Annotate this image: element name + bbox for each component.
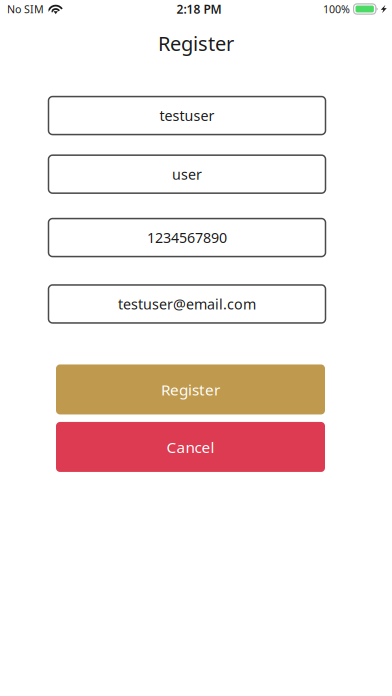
staticText: testuser@email.com [118, 294, 256, 314]
staticText: Register [161, 379, 220, 400]
button[interactable]: 1234567890 [48, 219, 325, 257]
staticText: Cancel [166, 437, 214, 457]
staticText: Register [158, 30, 234, 57]
staticText: No SIM [7, 2, 44, 16]
button[interactable]: Cancel [56, 422, 325, 472]
staticText: user [172, 164, 202, 184]
staticText: testuser [159, 106, 214, 125]
button[interactable]: testuser@email.com [48, 285, 325, 323]
button[interactable]: Register [56, 364, 325, 414]
button[interactable]: testuser [48, 97, 325, 135]
staticText: 2:18 PM [176, 1, 221, 17]
staticText: 100% [323, 2, 350, 16]
button[interactable]: user [48, 155, 325, 193]
staticText: 1234567890 [147, 228, 227, 247]
